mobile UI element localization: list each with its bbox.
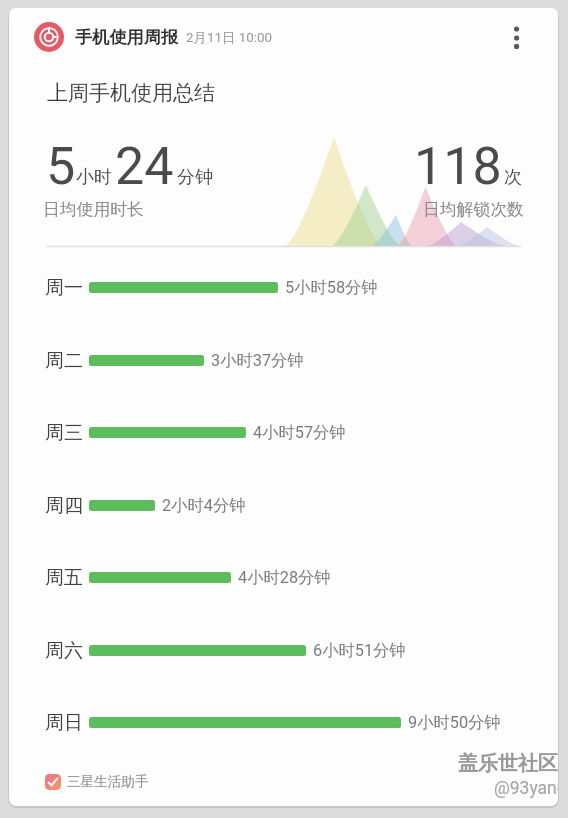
staticText: 周六 bbox=[45, 639, 83, 663]
button[interactable]: 周三 bbox=[9, 396, 558, 468]
staticText: 周五 bbox=[45, 566, 83, 590]
button[interactable] bbox=[9, 8, 558, 68]
staticText: 2小时4分钟 bbox=[162, 495, 246, 516]
staticText: 4小时57分钟 bbox=[253, 422, 346, 443]
staticText: 日均使用时长 bbox=[43, 199, 144, 220]
staticText: 周二 bbox=[45, 349, 83, 373]
staticText: 日均解锁次数 bbox=[423, 199, 524, 220]
staticText: 6小时51分钟 bbox=[313, 640, 406, 661]
button[interactable]: 三星生活助手 bbox=[39, 768, 239, 798]
staticText: @93yang bbox=[494, 778, 558, 799]
staticText: 次 bbox=[504, 166, 522, 189]
staticText: 三星生活助手 bbox=[67, 773, 149, 790]
staticText: 小时 bbox=[76, 166, 112, 189]
button[interactable]: 周二 bbox=[9, 324, 558, 396]
staticText: 4小时28分钟 bbox=[238, 567, 331, 588]
staticText: 上周手机使用总结 bbox=[47, 80, 215, 106]
staticText: 分钟 bbox=[177, 166, 213, 189]
button[interactable]: 周四 bbox=[9, 469, 558, 541]
staticText: 24 bbox=[115, 136, 174, 197]
staticText: 周四 bbox=[45, 494, 83, 518]
staticText: 盖乐世社区 bbox=[458, 751, 558, 776]
staticText: 周三 bbox=[45, 421, 83, 445]
staticText: 118 bbox=[414, 136, 502, 197]
button[interactable] bbox=[501, 20, 533, 60]
button[interactable]: 周五 bbox=[9, 541, 558, 613]
staticText: 5小时58分钟 bbox=[285, 277, 378, 298]
staticText: 5 bbox=[46, 136, 76, 197]
staticText: 周日 bbox=[45, 711, 83, 735]
staticText: 2月11日 10:00 bbox=[186, 29, 273, 46]
staticText: 3小时37分钟 bbox=[211, 350, 304, 371]
staticText: 手机使用周报 bbox=[75, 26, 179, 48]
staticText: 9小时50分钟 bbox=[408, 712, 501, 733]
button[interactable]: 周一 bbox=[9, 251, 558, 323]
staticText: 周一 bbox=[45, 276, 83, 300]
button[interactable]: 周日 bbox=[9, 686, 558, 758]
button[interactable]: 周六 bbox=[9, 614, 558, 686]
